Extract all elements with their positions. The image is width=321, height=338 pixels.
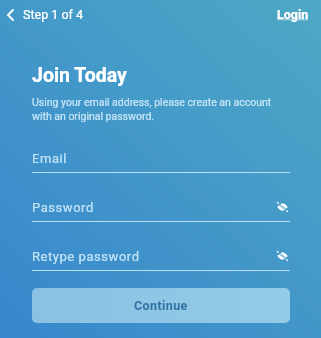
button[interactable]: Retype password bbox=[32, 243, 290, 271]
button[interactable]: Step 1 of 4 bbox=[2, 4, 91, 25]
staticText: Email bbox=[32, 151, 67, 166]
button[interactable]: Show password bbox=[273, 198, 291, 216]
button[interactable]: Login bbox=[265, 3, 321, 26]
staticText: Password bbox=[32, 200, 94, 215]
button[interactable]: Password bbox=[32, 194, 290, 222]
staticText: Step 1 of 4 bbox=[23, 7, 83, 22]
staticText: Join Today bbox=[32, 64, 127, 87]
staticText: Using your email address, please create … bbox=[32, 96, 277, 123]
staticText: Login bbox=[277, 7, 309, 22]
button[interactable]: Show password bbox=[273, 247, 291, 265]
button[interactable]: Continue bbox=[32, 288, 290, 323]
button[interactable]: Email bbox=[32, 145, 290, 173]
staticText: Continue bbox=[134, 298, 188, 313]
staticText: Retype password bbox=[32, 249, 140, 264]
